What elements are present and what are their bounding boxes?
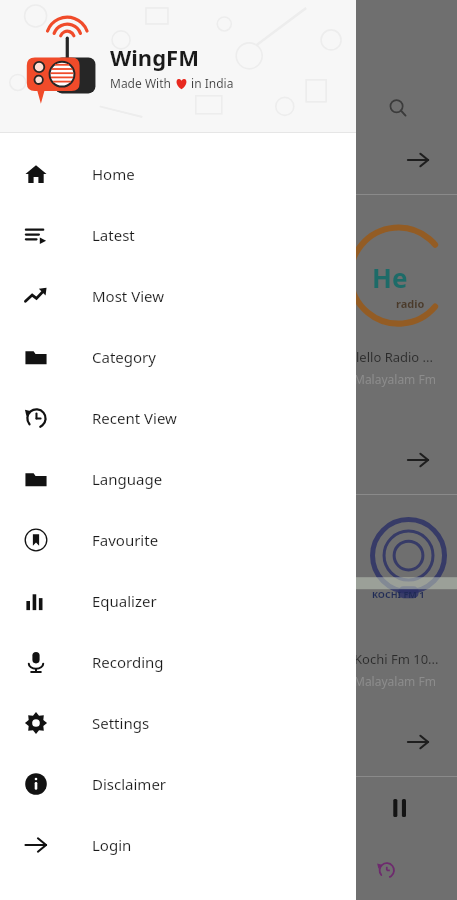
staticText: Recording xyxy=(92,652,164,672)
staticText: He xyxy=(372,260,408,295)
staticText: Favourite xyxy=(92,530,159,550)
button[interactable]: More xyxy=(396,728,440,756)
button[interactable]: Category xyxy=(0,326,356,387)
button[interactable]: Disclaimer xyxy=(0,753,356,814)
staticText: Latest xyxy=(92,225,135,245)
button[interactable]: Recent View xyxy=(0,387,356,448)
button[interactable]: History xyxy=(368,852,404,888)
staticText: Home xyxy=(92,164,135,184)
staticText: KOCHI FM 1 xyxy=(372,588,425,600)
staticText: WingFM xyxy=(110,42,199,72)
button[interactable]: Latest xyxy=(0,204,356,265)
button[interactable]: Home xyxy=(0,143,356,204)
staticText: Login xyxy=(92,835,132,855)
staticText: Language xyxy=(92,469,163,489)
button[interactable]: Login xyxy=(0,814,356,875)
button[interactable]: Equalizer xyxy=(0,570,356,631)
staticText: Made With xyxy=(110,75,175,91)
button[interactable]: Language xyxy=(0,448,356,509)
staticText: Recent View xyxy=(92,408,177,428)
staticText: Category xyxy=(92,347,156,367)
staticText: lello Radio ... xyxy=(356,348,434,366)
staticText: Equalizer xyxy=(92,591,157,611)
button[interactable]: Recording xyxy=(0,631,356,692)
staticText: Disclaimer xyxy=(92,774,167,794)
button[interactable]: Favourite xyxy=(0,509,356,570)
staticText: Kochi Fm 10... xyxy=(354,650,439,668)
staticText: radio xyxy=(396,296,425,311)
staticText: in India xyxy=(188,75,234,91)
staticText: Most View xyxy=(92,286,165,306)
button[interactable]: More xyxy=(396,146,440,174)
button[interactable]: Pause xyxy=(380,788,420,828)
staticText: Malayalam Fm xyxy=(354,673,436,689)
button[interactable]: Search xyxy=(376,86,420,130)
button[interactable]: Settings xyxy=(0,692,356,753)
staticText: Malayalam Fm xyxy=(354,371,436,387)
button[interactable]: More xyxy=(396,446,440,474)
button[interactable]: Most View xyxy=(0,265,356,326)
staticText: Settings xyxy=(92,713,150,733)
